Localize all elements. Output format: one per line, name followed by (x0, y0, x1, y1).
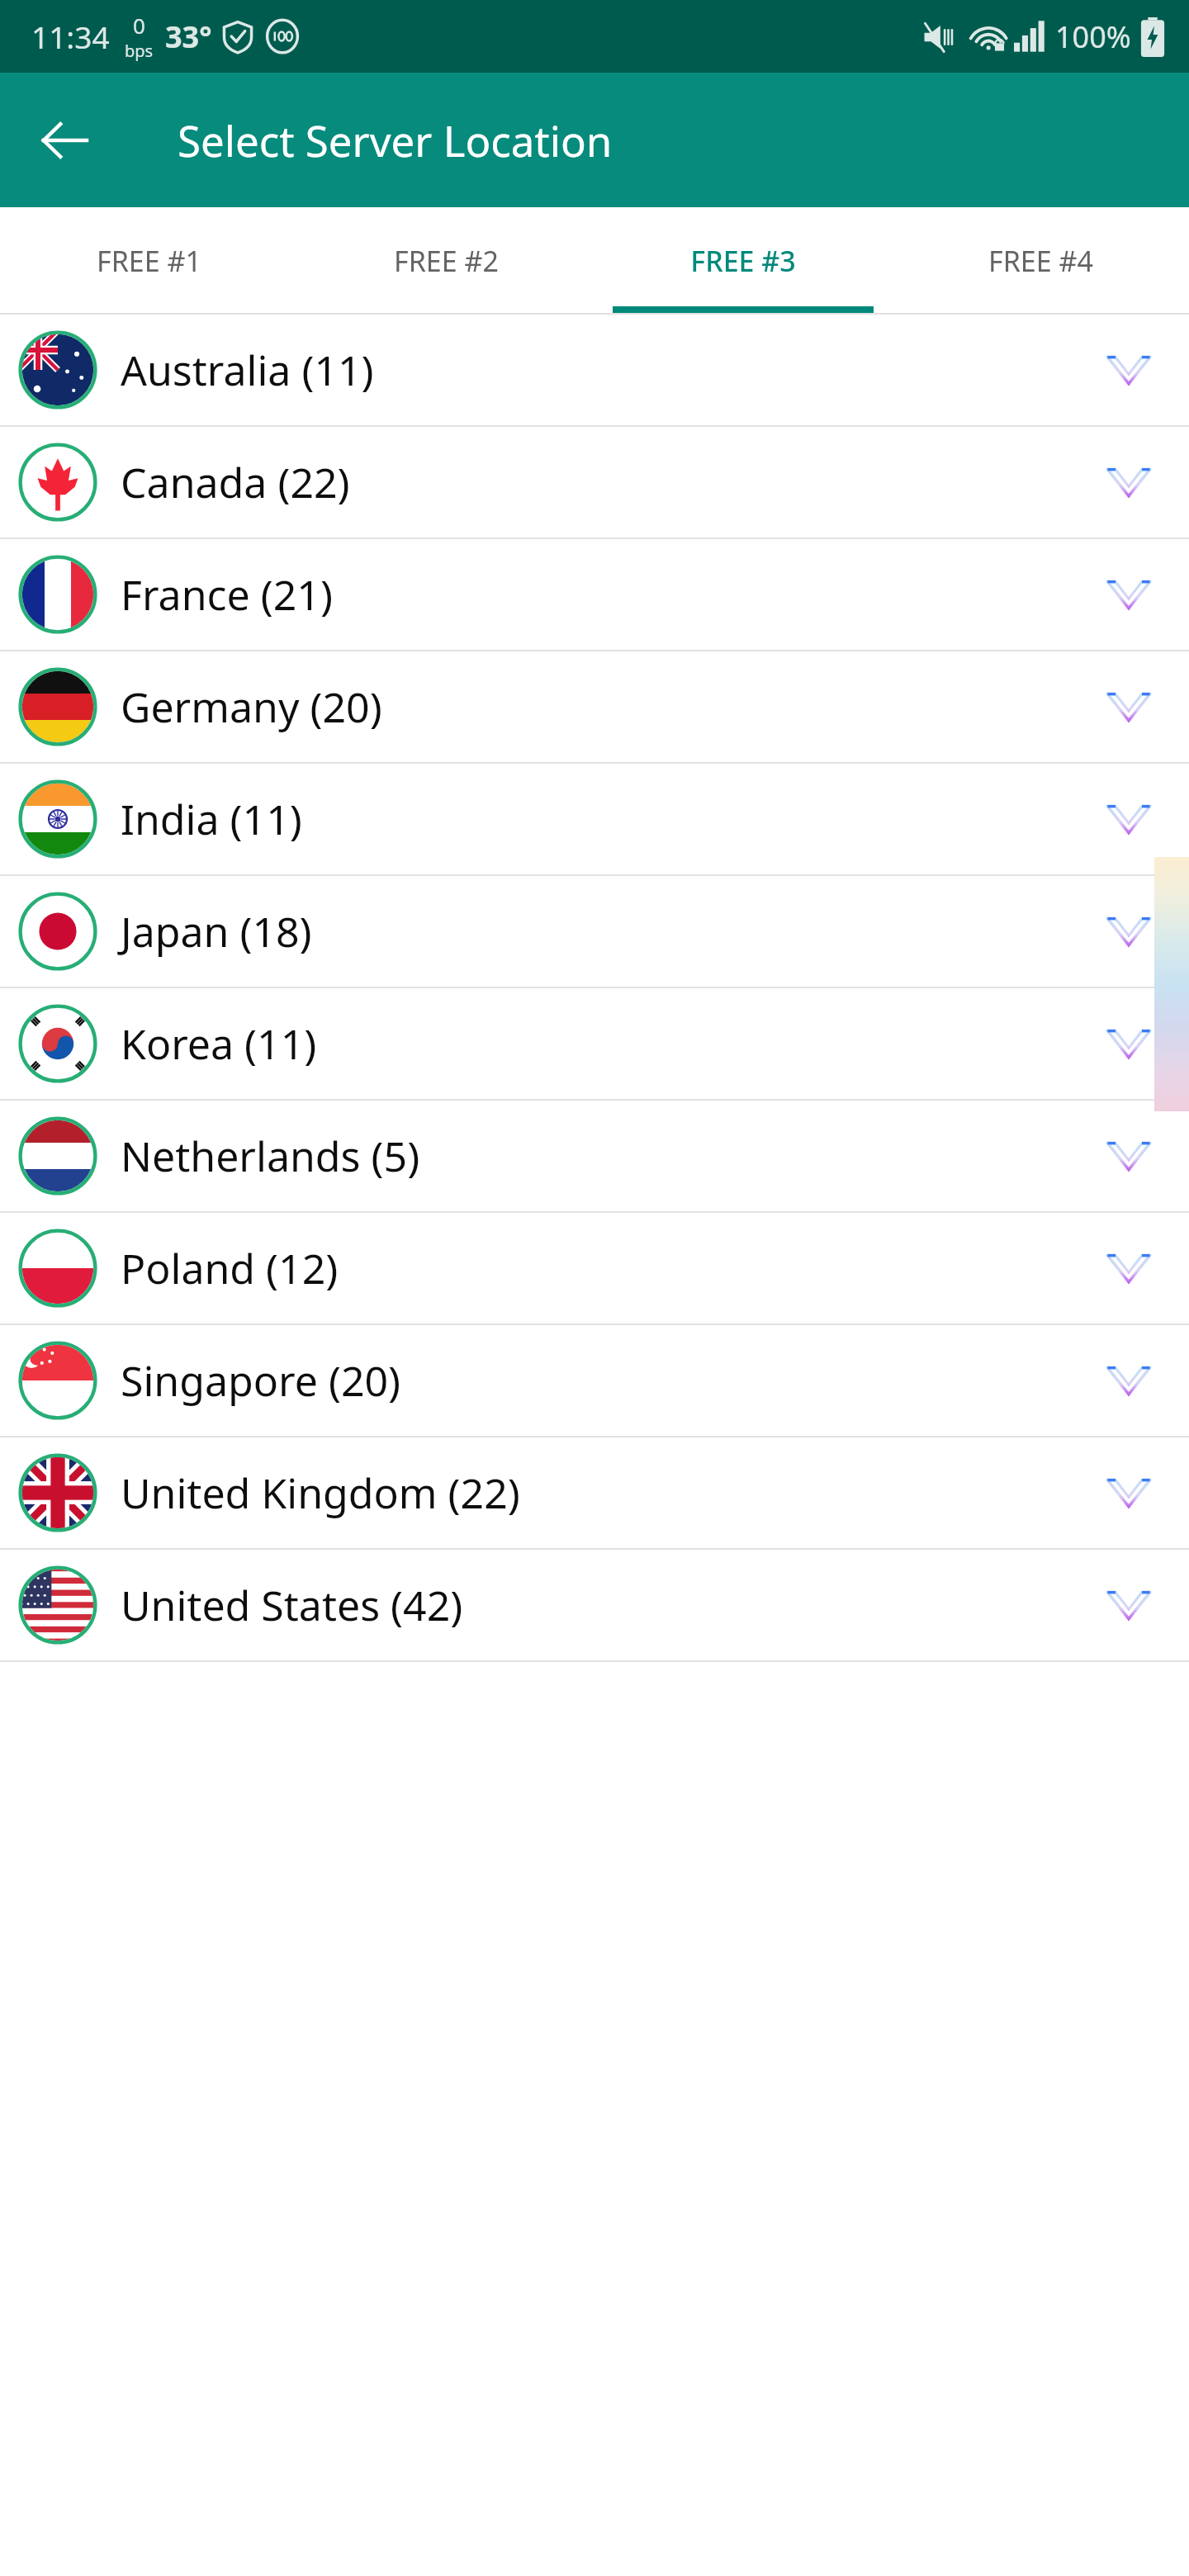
button[interactable]: Expand United Kingdom (1083, 1447, 1174, 1538)
staticText: Korea (11) (121, 1016, 317, 1072)
button[interactable]: Expand Australia (1083, 324, 1174, 415)
button[interactable]: FREE #3 (594, 207, 892, 315)
button[interactable]: Japan (18) (0, 876, 1189, 987)
staticText: Singapore (20) (121, 1352, 401, 1409)
button[interactable]: France (21) (0, 539, 1189, 650)
button[interactable]: Korea (11) (0, 988, 1189, 1099)
staticText: Poland (12) (121, 1240, 339, 1296)
button[interactable]: Australia (11) (0, 315, 1189, 425)
staticText: 11:34 (31, 16, 110, 57)
button[interactable]: Netherlands (5) (0, 1101, 1189, 1211)
button[interactable]: United Kingdom (22) (0, 1437, 1189, 1548)
button[interactable]: Expand Singapore (1083, 1335, 1174, 1426)
button[interactable]: Expand Japan (1083, 886, 1174, 977)
staticText: FREE #4 (988, 242, 1093, 280)
button[interactable]: Expand Netherlands (1083, 1110, 1174, 1201)
staticText: 33° (165, 17, 212, 57)
button[interactable]: FREE #2 (297, 207, 594, 315)
staticText: 100% (1055, 17, 1131, 57)
staticText: United Kingdom (22) (121, 1465, 520, 1521)
staticText: FREE #1 (97, 242, 201, 280)
button[interactable]: Poland (12) (0, 1213, 1189, 1324)
button[interactable]: Expand Germany (1083, 661, 1174, 752)
staticText: United States (42) (121, 1577, 463, 1633)
staticText: Select Server Location (178, 111, 613, 168)
button[interactable]: FREE #1 (0, 207, 297, 315)
staticText: FREE #3 (690, 242, 796, 280)
staticText: 0 (133, 11, 145, 40)
button[interactable]: Expand France (1083, 549, 1174, 640)
staticText: bps (125, 40, 154, 62)
button[interactable]: United States (42) (0, 1550, 1189, 1660)
staticText: France (21) (121, 566, 333, 623)
button[interactable]: Expand India (1083, 774, 1174, 864)
staticText: Canada (22) (121, 454, 350, 510)
button[interactable]: Expand United States (1083, 1560, 1174, 1650)
staticText: Australia (11) (121, 342, 374, 398)
button[interactable]: Expand Canada (1083, 437, 1174, 528)
staticText: Japan (18) (121, 903, 312, 959)
button[interactable]: Canada (22) (0, 427, 1189, 537)
staticText: FREE #2 (394, 242, 499, 280)
staticText: Germany (20) (121, 679, 382, 735)
button[interactable]: FREE #4 (892, 207, 1189, 315)
staticText: India (11) (121, 791, 302, 847)
button[interactable]: Expand Poland (1083, 1223, 1174, 1314)
button[interactable]: India (11) (0, 764, 1189, 874)
button[interactable]: Singapore (20) (0, 1325, 1189, 1436)
button[interactable]: Germany (20) (0, 651, 1189, 762)
button[interactable]: Back (25, 101, 104, 180)
button[interactable]: Expand Korea (1083, 998, 1174, 1089)
staticText: Netherlands (5) (121, 1128, 420, 1184)
